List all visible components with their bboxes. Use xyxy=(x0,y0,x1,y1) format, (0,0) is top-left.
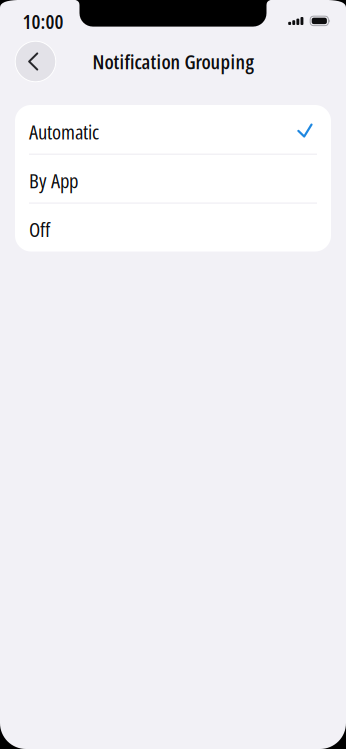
staticText: 10:00 xyxy=(22,8,63,35)
staticText: By App xyxy=(29,166,78,194)
staticText: Automatic xyxy=(29,117,99,146)
button[interactable]: By App xyxy=(15,154,331,202)
button[interactable]: Back xyxy=(14,40,56,82)
staticText: Off xyxy=(29,215,50,243)
button[interactable]: Off xyxy=(15,202,331,251)
button[interactable]: Automatic xyxy=(15,105,331,154)
staticText: Notification Grouping xyxy=(92,48,253,75)
